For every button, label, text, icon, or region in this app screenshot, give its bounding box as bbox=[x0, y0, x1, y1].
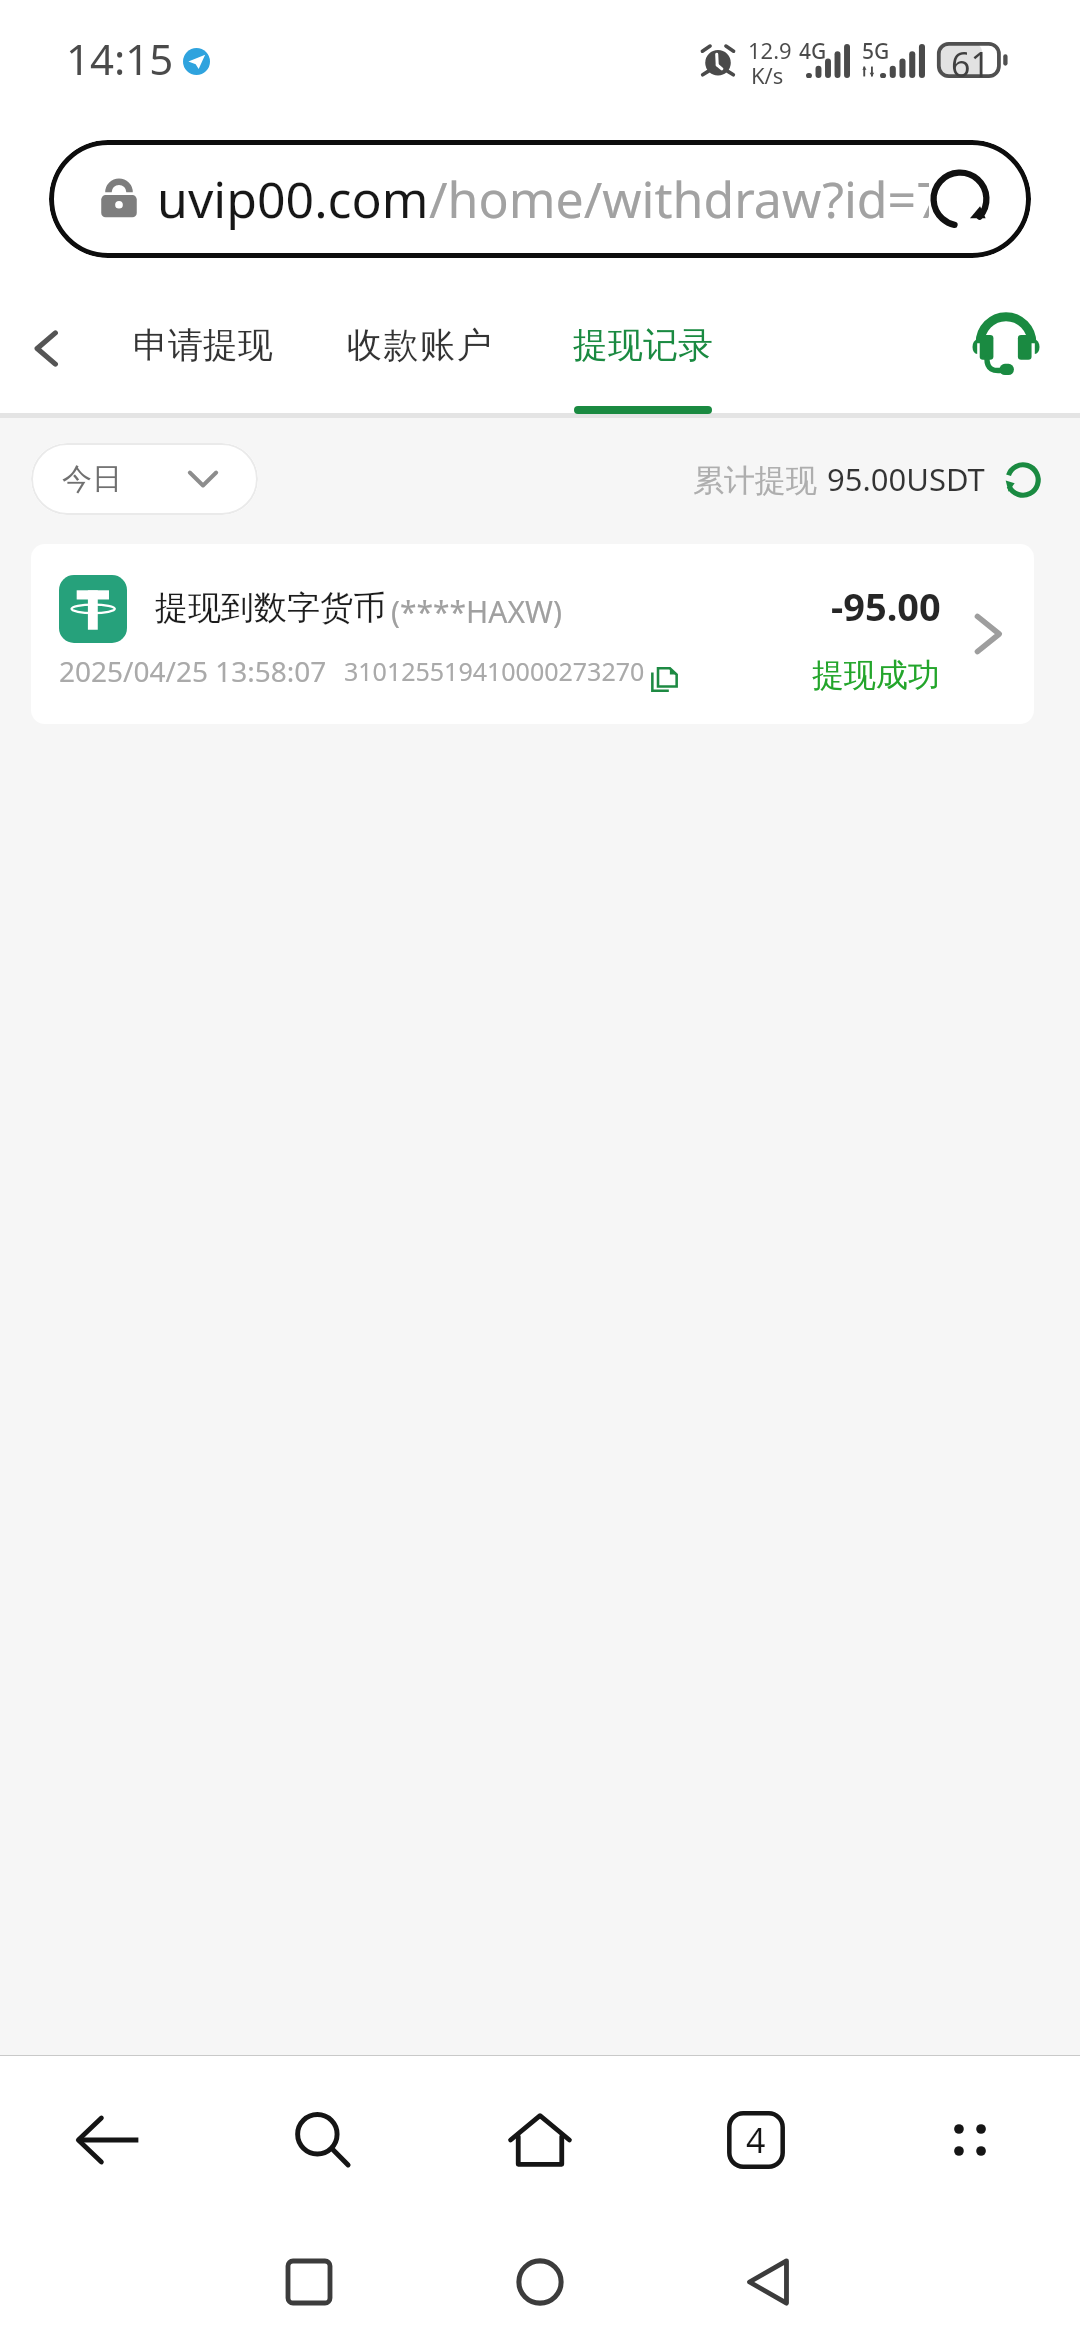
staticText: 提现成功 bbox=[812, 655, 940, 695]
staticText: 提现到数字货币 bbox=[155, 587, 386, 629]
staticText: -95.00 bbox=[831, 580, 941, 632]
staticText: 61 bbox=[951, 41, 990, 87]
staticText: 4G bbox=[799, 37, 827, 66]
button[interactable]: Copy order number bbox=[642, 657, 686, 701]
staticText: 4 bbox=[746, 2117, 766, 2163]
button[interactable]: Home bbox=[478, 2078, 602, 2202]
staticText: 12.9 bbox=[748, 35, 792, 65]
button[interactable]: 收款账户 bbox=[347, 280, 497, 418]
button[interactable]: Open tabs, 4 open bbox=[694, 2078, 818, 2202]
staticText: uvip00.com bbox=[157, 165, 429, 233]
button[interactable]: 今日 bbox=[31, 443, 258, 515]
button[interactable]: Refresh total bbox=[995, 452, 1051, 508]
staticText: 95.00USDT bbox=[827, 458, 985, 500]
staticText: 收款账户 bbox=[347, 323, 497, 367]
staticText: 5G bbox=[862, 37, 890, 66]
button[interactable]: Back bbox=[0, 298, 96, 398]
staticText: 提现记录 bbox=[573, 323, 723, 367]
staticText: 14:15 bbox=[66, 30, 174, 87]
staticText: (****HAXW) bbox=[391, 591, 562, 632]
staticText: 累计提现 bbox=[693, 461, 817, 500]
button[interactable]: 提现记录 bbox=[573, 280, 723, 418]
button[interactable]: Recent apps bbox=[249, 2222, 369, 2340]
button[interactable]: Customer service bbox=[956, 294, 1056, 394]
staticText: /home/withdraw?id=78 bbox=[429, 165, 929, 233]
button[interactable]: More options bbox=[908, 2078, 1032, 2202]
button[interactable]: Back bbox=[708, 2222, 828, 2340]
button[interactable]: Reload page bbox=[901, 140, 1019, 258]
button[interactable]: 提现到数字货币 bbox=[31, 544, 1034, 724]
button[interactable]: uvip00.com bbox=[49, 140, 1031, 258]
staticText: K/s bbox=[751, 60, 784, 90]
staticText: 310125519410000273270 bbox=[344, 654, 645, 688]
staticText: 今日 bbox=[62, 460, 122, 498]
staticText: 2025/04/25 13:58:07 bbox=[59, 652, 327, 690]
button[interactable]: Back bbox=[46, 2078, 170, 2202]
button[interactable]: 申请提现 bbox=[133, 280, 283, 418]
button[interactable]: Search bbox=[260, 2078, 384, 2202]
staticText: 申请提现 bbox=[133, 323, 283, 367]
button[interactable]: Home bbox=[480, 2222, 600, 2340]
